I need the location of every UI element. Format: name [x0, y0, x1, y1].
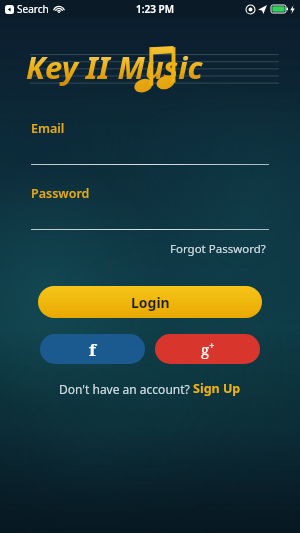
staticText: Search: [17, 2, 49, 16]
staticText: Email: [31, 120, 65, 137]
button[interactable]: Login: [38, 286, 262, 318]
button[interactable]: Sign in with Facebook: [40, 334, 145, 364]
staticText: Don't have an account?: [59, 381, 193, 397]
button[interactable]: Password: [31, 185, 269, 230]
staticText: g+: [201, 339, 215, 359]
staticText: 1:23 PM: [136, 2, 174, 16]
button[interactable]: Sign in with Google Plus: [155, 334, 260, 364]
staticText: Login: [131, 293, 170, 312]
button[interactable]: Forgot Password?: [168, 238, 268, 260]
staticText: Password: [31, 185, 90, 202]
staticText: Key II Music: [26, 46, 203, 88]
button[interactable]: Email: [31, 120, 269, 165]
button[interactable]: Sign Up: [193, 380, 241, 397]
staticText: f: [89, 338, 96, 361]
staticText: Sign Up: [193, 380, 241, 397]
staticText: Forgot Password?: [170, 241, 266, 257]
